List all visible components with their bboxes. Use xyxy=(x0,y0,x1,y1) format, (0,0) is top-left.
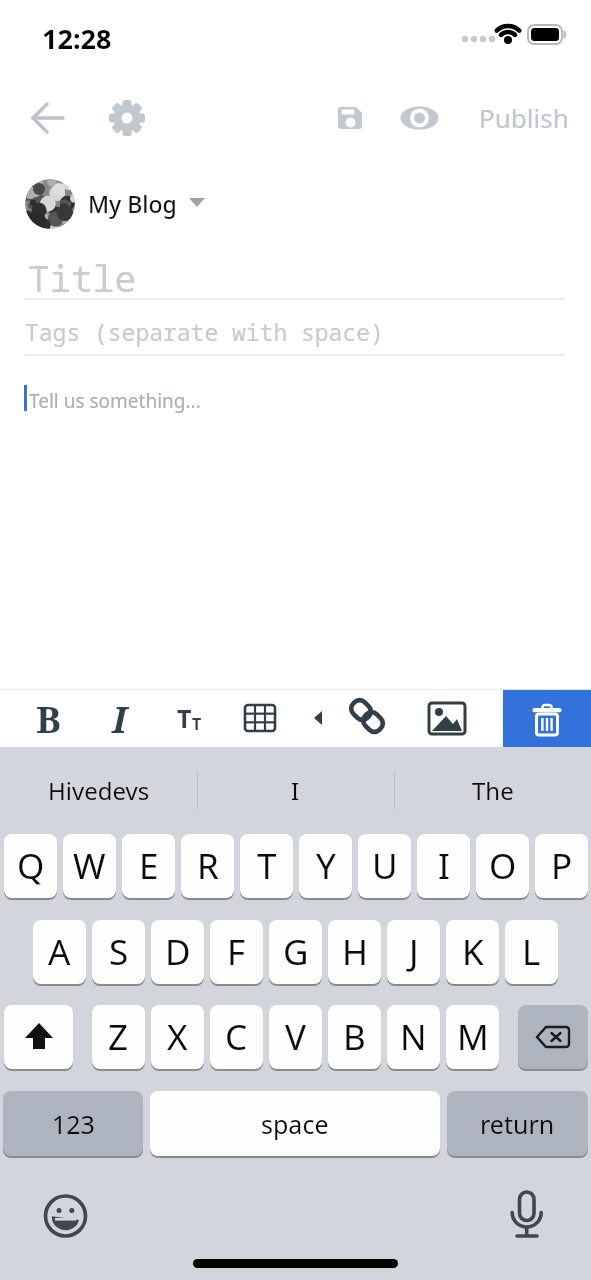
button[interactable]: T xyxy=(166,692,212,744)
staticText: T xyxy=(257,842,277,890)
button[interactable]: K xyxy=(446,920,499,984)
staticText: H xyxy=(342,928,368,976)
button[interactable]: Title xyxy=(0,244,591,300)
staticText: O xyxy=(489,842,517,890)
button[interactable]: return xyxy=(447,1091,588,1156)
button[interactable]: L xyxy=(505,920,558,984)
staticText: E xyxy=(139,842,159,890)
button[interactable]: P xyxy=(535,834,588,898)
button[interactable]: C xyxy=(210,1005,263,1069)
button[interactable] xyxy=(328,96,372,140)
button[interactable]: O xyxy=(476,834,529,898)
button[interactable] xyxy=(26,96,70,140)
staticText: K xyxy=(462,928,484,976)
button[interactable] xyxy=(503,690,591,747)
staticText: C xyxy=(225,1013,248,1061)
staticText: T xyxy=(192,713,202,735)
staticText: S xyxy=(109,928,129,976)
button[interactable]: I xyxy=(197,763,394,817)
button[interactable] xyxy=(502,1186,554,1242)
staticText: A xyxy=(48,928,71,976)
button[interactable]: R xyxy=(181,834,234,898)
button[interactable]: H xyxy=(328,920,381,984)
staticText: Tags (separate with space) xyxy=(25,316,384,347)
staticText: F xyxy=(227,928,246,976)
button[interactable]: 123 xyxy=(3,1091,143,1156)
staticText: space xyxy=(261,1107,329,1141)
staticText: R xyxy=(197,842,219,890)
staticText: Y xyxy=(316,842,336,890)
staticText: P xyxy=(551,842,573,890)
button[interactable] xyxy=(105,96,149,140)
button[interactable] xyxy=(4,1005,73,1069)
button[interactable]: T xyxy=(240,834,293,898)
button[interactable]: I xyxy=(417,834,470,898)
staticText: 12:28 xyxy=(42,20,112,57)
staticText: Q xyxy=(17,842,45,890)
button[interactable] xyxy=(238,692,282,744)
button[interactable]: W xyxy=(63,834,116,898)
button[interactable]: Publish xyxy=(479,100,569,135)
staticText: Z xyxy=(108,1013,129,1061)
button[interactable] xyxy=(345,692,389,744)
staticText: The xyxy=(472,774,514,807)
button[interactable]: B xyxy=(328,1005,381,1069)
staticText: N xyxy=(400,1013,427,1061)
staticText: U xyxy=(372,842,398,890)
staticText: J xyxy=(409,928,419,976)
staticText: D xyxy=(165,928,191,976)
button[interactable]: D xyxy=(151,920,204,984)
staticText: W xyxy=(73,842,106,890)
button[interactable]: S xyxy=(92,920,145,984)
button[interactable] xyxy=(424,692,470,744)
button[interactable]: Z xyxy=(92,1005,145,1069)
button[interactable]: G xyxy=(269,920,322,984)
staticText: return xyxy=(480,1107,555,1141)
staticText: Title xyxy=(28,254,137,303)
staticText: T xyxy=(177,701,192,735)
button[interactable]: The xyxy=(394,763,591,817)
button[interactable] xyxy=(40,1190,92,1242)
staticText: M xyxy=(457,1013,489,1061)
staticText: I xyxy=(112,693,127,743)
button[interactable] xyxy=(398,96,442,140)
staticText: G xyxy=(283,928,309,976)
button[interactable]: I xyxy=(97,692,141,744)
button[interactable]: J xyxy=(387,920,440,984)
button[interactable]: V xyxy=(269,1005,322,1069)
staticText: I xyxy=(438,842,450,890)
button[interactable]: B xyxy=(26,692,70,744)
staticText: I xyxy=(291,774,300,807)
staticText: B xyxy=(36,693,61,743)
button[interactable]: Tell us something... xyxy=(0,370,591,680)
staticText: B xyxy=(343,1013,366,1061)
button[interactable]: Hivedevs xyxy=(0,763,197,817)
button[interactable]: M xyxy=(446,1005,499,1069)
staticText: V xyxy=(285,1013,307,1061)
button[interactable]: Y xyxy=(299,834,352,898)
staticText: 123 xyxy=(52,1107,95,1141)
staticText: Hivedevs xyxy=(48,774,150,807)
staticText: L xyxy=(522,928,541,976)
button[interactable]: N xyxy=(387,1005,440,1069)
button[interactable]: My Blog xyxy=(20,174,220,234)
staticText: My Blog xyxy=(88,188,177,219)
staticText: Tell us something... xyxy=(29,388,201,414)
button[interactable]: space xyxy=(150,1091,440,1156)
button[interactable]: X xyxy=(151,1005,204,1069)
staticText: X xyxy=(167,1013,188,1061)
staticText: Publish xyxy=(479,100,569,135)
button[interactable]: Q xyxy=(4,834,57,898)
button[interactable]: E xyxy=(122,834,175,898)
button[interactable]: F xyxy=(210,920,263,984)
button[interactable]: U xyxy=(358,834,411,898)
button[interactable] xyxy=(518,1005,588,1069)
button[interactable]: A xyxy=(33,920,86,984)
button[interactable]: Tags (separate with space) xyxy=(0,310,591,354)
